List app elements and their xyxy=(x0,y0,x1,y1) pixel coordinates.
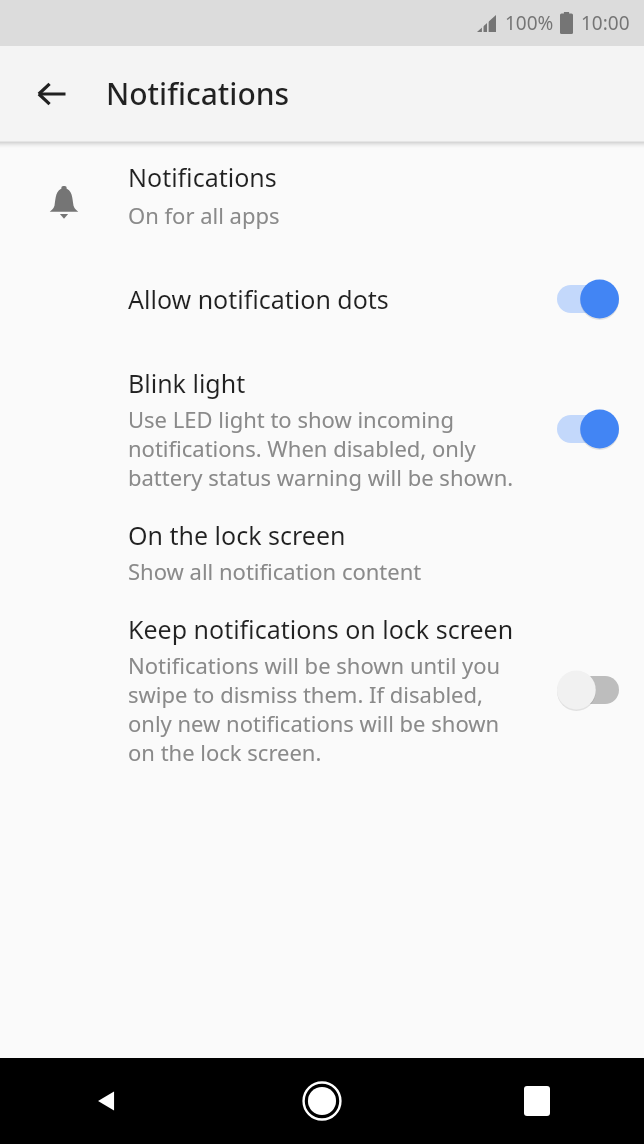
staticText: On the lock screen xyxy=(128,518,346,552)
button[interactable]: Blink light xyxy=(0,352,644,504)
staticText: Use LED light to show incoming notificat… xyxy=(128,404,520,492)
staticText: Notifications xyxy=(106,73,290,114)
staticText: Notifications will be shown until you sw… xyxy=(128,650,520,767)
button[interactable]: Back xyxy=(20,62,84,126)
button[interactable]: Notifications xyxy=(0,160,644,246)
button[interactable]: Allow notification dots xyxy=(0,246,644,352)
staticText: Allow notification dots xyxy=(128,282,389,316)
button[interactable]: Recent apps xyxy=(429,1058,644,1144)
button[interactable]: On the lock screen xyxy=(0,504,644,598)
staticText: 100% xyxy=(505,10,554,36)
staticText: On for all apps xyxy=(128,200,280,230)
staticText: Blink light xyxy=(128,366,246,400)
button[interactable]: Home xyxy=(214,1058,429,1144)
button[interactable]: Off xyxy=(532,659,644,721)
staticText: Keep notifications on lock screen xyxy=(128,612,514,646)
button[interactable]: Back xyxy=(0,1058,214,1144)
staticText: 10:00 xyxy=(581,10,630,36)
button[interactable]: Keep notifications on lock screen xyxy=(0,598,644,779)
button[interactable]: On xyxy=(532,268,644,330)
staticText: Notifications xyxy=(128,160,277,194)
staticText: Show all notification content xyxy=(128,556,422,586)
button[interactable]: On xyxy=(532,398,644,460)
